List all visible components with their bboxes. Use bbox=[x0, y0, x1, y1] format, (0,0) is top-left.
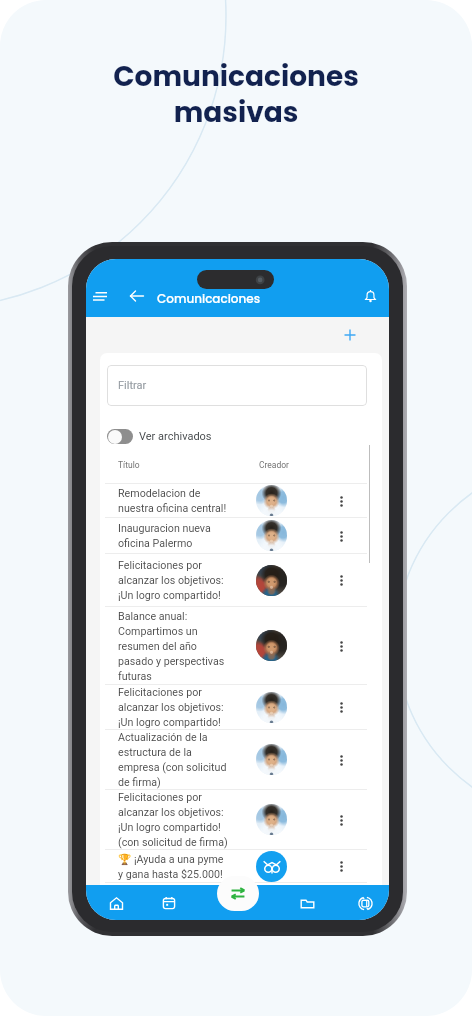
button[interactable]: Library bbox=[350, 888, 380, 918]
button[interactable]: Ver archivados bbox=[107, 429, 212, 444]
staticText: Felicitaciones por alcanzar los objetivo… bbox=[118, 686, 246, 728]
staticText: Remodelacion de nuestra oficina central! bbox=[118, 487, 246, 514]
button[interactable]: More options bbox=[333, 699, 349, 715]
button[interactable]: Felicitaciones por alcanzar los objetivo… bbox=[105, 790, 367, 849]
button[interactable]: More options bbox=[333, 638, 349, 654]
button[interactable]: Add bbox=[341, 326, 359, 344]
button[interactable]: Felicitaciones por alcanzar los objetivo… bbox=[105, 685, 367, 729]
button[interactable]: Swap bbox=[217, 876, 259, 911]
button[interactable]: More options bbox=[333, 858, 349, 874]
staticText: Actualización de la estructura de la emp… bbox=[118, 731, 246, 788]
staticText: Inauguracion nueva oficina Palermo bbox=[118, 522, 246, 549]
button[interactable]: 🏆 ¡Ayuda a una pyme y gana hasta $25.000… bbox=[105, 850, 367, 882]
button[interactable]: Felicitaciones por alcanzar los objetivo… bbox=[105, 554, 367, 606]
staticText: Título bbox=[118, 460, 140, 470]
staticText: Felicitaciones por alcanzar los objetivo… bbox=[118, 559, 246, 601]
staticText: Felicitaciones por alcanzar los objetivo… bbox=[118, 791, 246, 848]
button[interactable]: More options bbox=[333, 752, 349, 768]
staticText: Ver archivados bbox=[139, 430, 212, 443]
button[interactable]: More options bbox=[333, 812, 349, 828]
button[interactable]: Home bbox=[101, 888, 131, 918]
staticText: Creador bbox=[259, 460, 289, 470]
staticText: Comunicaciones bbox=[157, 290, 261, 307]
button[interactable]: Filtrar bbox=[107, 365, 367, 406]
button[interactable]: Back bbox=[126, 285, 148, 307]
staticText: Filtrar bbox=[118, 379, 147, 392]
button[interactable]: More options bbox=[333, 572, 349, 588]
button[interactable]: Remodelacion de nuestra oficina central! bbox=[105, 484, 367, 517]
staticText: Balance anual: Compartimos un resumen de… bbox=[118, 610, 246, 682]
button[interactable]: Folder bbox=[292, 888, 322, 918]
staticText: 🏆 ¡Ayuda a una pyme y gana hasta $25.000… bbox=[118, 853, 246, 880]
button[interactable]: More options bbox=[333, 493, 349, 509]
button[interactable]: More options bbox=[333, 528, 349, 544]
button[interactable]: Inauguracion nueva oficina Palermo bbox=[105, 518, 367, 553]
button[interactable]: Calendar bbox=[154, 888, 184, 918]
staticText: Comunicaciones masivas bbox=[113, 57, 359, 132]
button[interactable]: Notifications bbox=[359, 285, 381, 307]
button[interactable]: Menu bbox=[89, 285, 111, 307]
button[interactable]: Balance anual: Compartimos un resumen de… bbox=[105, 607, 367, 684]
button[interactable]: Actualización de la estructura de la emp… bbox=[105, 730, 367, 789]
